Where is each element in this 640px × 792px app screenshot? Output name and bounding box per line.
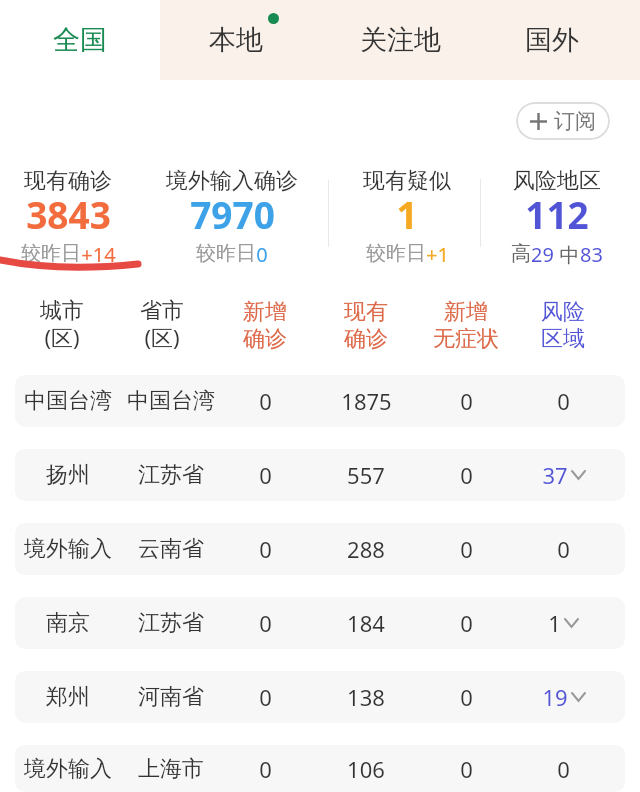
staticText: 风险 区域 xyxy=(541,298,585,353)
staticText: 0 xyxy=(557,754,570,784)
staticText: 0 xyxy=(256,241,268,268)
staticText: 新增 无症状 xyxy=(433,298,499,353)
staticText: 0 xyxy=(259,460,272,490)
staticText: 上海市 xyxy=(138,755,204,783)
button[interactable]: 全国 xyxy=(0,0,160,80)
staticText: 中国台湾 xyxy=(127,387,215,415)
staticText: 境外输入 xyxy=(24,755,112,783)
staticText: 云南省 xyxy=(138,535,204,563)
button[interactable]: 郑州 xyxy=(15,671,625,723)
staticText: 0 xyxy=(460,608,473,638)
staticText: 0 xyxy=(460,534,473,564)
staticText: 0 xyxy=(557,534,570,564)
staticText: 29 xyxy=(531,241,554,268)
staticText: 省市 (区) xyxy=(140,297,184,353)
staticText: 557 xyxy=(347,460,385,490)
staticText: 0 xyxy=(259,754,272,784)
staticText: +14 xyxy=(81,241,116,268)
staticText: 现有疑似 xyxy=(363,167,451,195)
staticText: 较昨日 xyxy=(366,241,426,266)
staticText: 112 xyxy=(525,189,589,239)
staticText: 风险地区 xyxy=(513,167,601,195)
staticText: 订阅 xyxy=(554,108,596,134)
staticText: 0 xyxy=(460,460,473,490)
staticText: 0 xyxy=(259,608,272,638)
staticText: 0 xyxy=(259,386,272,416)
staticText: 现有确诊 xyxy=(24,167,112,195)
staticText: 郑州 xyxy=(46,683,90,711)
button[interactable]: 关注地 xyxy=(320,0,480,80)
staticText: 本地 xyxy=(209,23,263,57)
staticText: 184 xyxy=(347,608,385,638)
button[interactable]: 本地 xyxy=(160,0,320,80)
staticText: 0 xyxy=(259,534,272,564)
staticText: 288 xyxy=(347,534,385,564)
staticText: 1 xyxy=(548,608,561,638)
staticText: 3843 xyxy=(26,189,111,239)
staticText: 中 xyxy=(554,241,580,268)
button[interactable]: 国外 xyxy=(480,0,640,80)
staticText: 83 xyxy=(580,241,603,268)
button[interactable]: 订阅 xyxy=(516,102,610,140)
staticText: 新增 确诊 xyxy=(243,298,287,353)
staticText: 7970 xyxy=(190,189,275,239)
staticText: 0 xyxy=(460,386,473,416)
staticText: 1875 xyxy=(341,386,392,416)
staticText: 城市 (区) xyxy=(40,297,84,353)
staticText: 106 xyxy=(347,754,385,784)
staticText: 境外输入确诊 xyxy=(166,167,298,195)
staticText: 高 xyxy=(511,241,531,266)
staticText: 江苏省 xyxy=(138,609,204,637)
button[interactable]: 中国台湾 xyxy=(15,375,625,427)
staticText: 较昨日 xyxy=(196,241,256,266)
staticText: 0 xyxy=(557,386,570,416)
staticText: 较昨日 xyxy=(21,241,81,266)
staticText: 关注地 xyxy=(360,23,441,57)
staticText: 0 xyxy=(460,754,473,784)
staticText: 境外输入 xyxy=(24,535,112,563)
button[interactable]: 南京 xyxy=(15,597,625,649)
staticText: 0 xyxy=(259,682,272,712)
button[interactable]: 扬州 xyxy=(15,449,625,501)
button[interactable]: 境外输入 xyxy=(15,523,625,575)
staticText: 南京 xyxy=(46,609,90,637)
staticText: 1 xyxy=(396,189,418,239)
button[interactable]: 境外输入 xyxy=(15,745,625,792)
staticText: 河南省 xyxy=(138,683,204,711)
staticText: 现有 确诊 xyxy=(344,298,388,353)
staticText: 扬州 xyxy=(46,461,90,489)
staticText: 全国 xyxy=(53,23,107,57)
staticText: 138 xyxy=(347,682,385,712)
staticText: 19 xyxy=(542,682,568,712)
staticText: 江苏省 xyxy=(138,461,204,489)
staticText: 37 xyxy=(542,460,568,490)
staticText: 0 xyxy=(460,682,473,712)
staticText: 中国台湾 xyxy=(24,387,112,415)
staticText: 国外 xyxy=(525,23,579,57)
staticText: +1 xyxy=(426,241,449,268)
